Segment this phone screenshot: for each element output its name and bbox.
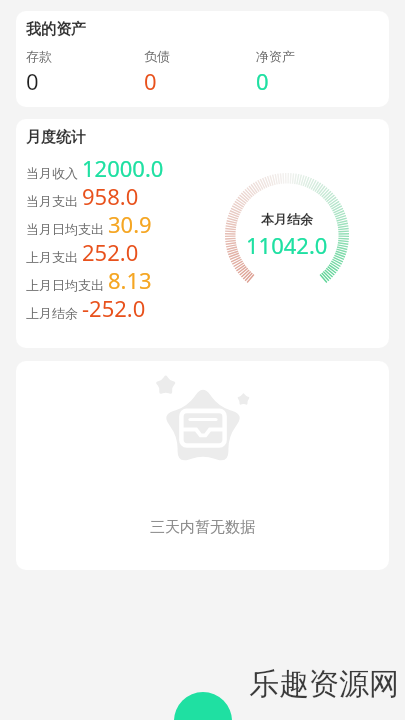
staticText: 本月结余 xyxy=(261,211,313,227)
button[interactable]: Add record xyxy=(174,692,232,720)
staticText: 12000.0 xyxy=(82,153,164,181)
staticText: 上月支出 xyxy=(26,249,78,265)
staticText: 8.13 xyxy=(108,265,152,293)
staticText: 净资产 xyxy=(256,48,295,64)
button[interactable]: 负债 xyxy=(144,48,170,96)
staticText: 0 xyxy=(144,66,157,96)
staticText: 11042.0 xyxy=(246,230,328,260)
staticText: 上月结余 xyxy=(26,305,78,321)
staticText: 负债 xyxy=(144,48,170,64)
staticText: 当月日均支出 xyxy=(26,221,104,237)
staticText: 乐趣资源网 xyxy=(249,665,399,703)
button[interactable]: 我的资产 xyxy=(16,11,389,107)
button[interactable]: 月度统计 xyxy=(16,119,389,348)
staticText: 存款 xyxy=(26,48,52,64)
staticText: 当月支出 xyxy=(26,193,78,209)
staticText: 三天内暂无数据 xyxy=(150,518,255,537)
staticText: 上月日均支出 xyxy=(26,277,104,293)
button[interactable]: 净资产 xyxy=(256,48,295,96)
button[interactable]: 存款 xyxy=(26,48,52,96)
staticText: -252.0 xyxy=(82,293,146,321)
staticText: 我的资产 xyxy=(26,20,86,39)
staticText: 30.9 xyxy=(108,209,152,237)
staticText: 252.0 xyxy=(82,237,139,265)
staticText: 958.0 xyxy=(82,181,139,209)
staticText: 当月收入 xyxy=(26,165,78,181)
staticText: 0 xyxy=(26,66,39,96)
button[interactable]: 三天内暂无数据 xyxy=(16,361,389,570)
staticText: 月度统计 xyxy=(26,128,86,147)
staticText: 0 xyxy=(256,66,269,96)
